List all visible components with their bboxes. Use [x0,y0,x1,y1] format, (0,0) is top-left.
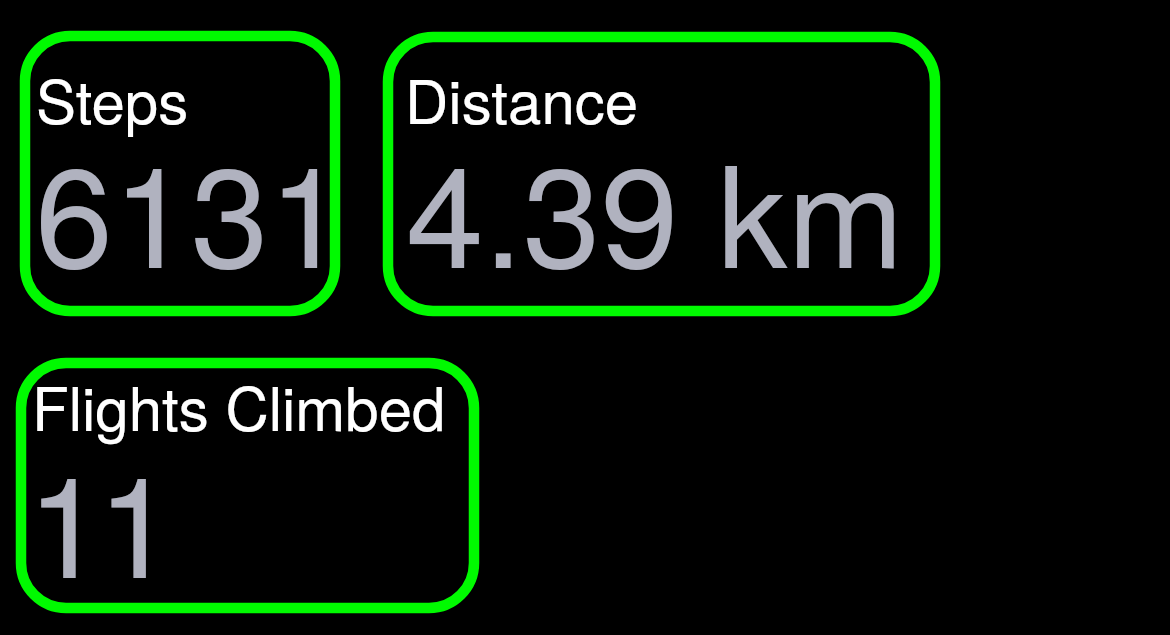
button[interactable]: Distance 4.39 km [388,37,935,311]
staticText: 11 [27,417,168,608]
staticText: Steps [36,55,189,141]
staticText: Distance [405,55,639,141]
staticText: 6131 [35,107,335,307]
button[interactable]: Steps 6131 [25,36,335,311]
button[interactable]: Flights Climbed 11 [21,363,474,608]
staticText: 4.39 km [406,107,904,307]
staticText: Flights Climbed [32,363,446,448]
